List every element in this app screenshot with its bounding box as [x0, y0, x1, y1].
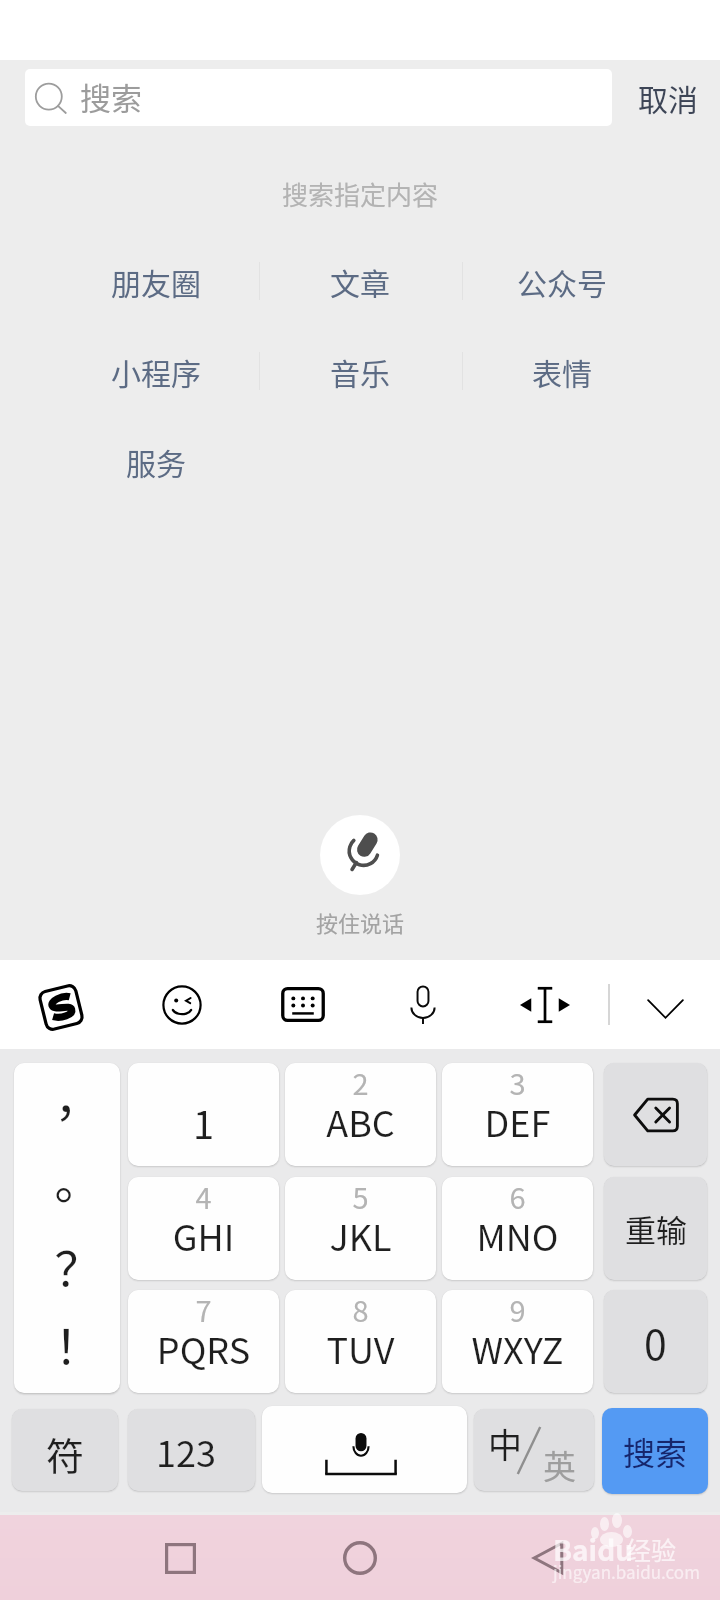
- button[interactable]: 文章: [290, 249, 430, 313]
- staticText: 服务: [126, 440, 186, 483]
- button[interactable]: Home: [320, 1532, 400, 1584]
- button[interactable]: 6 MNO: [442, 1177, 593, 1280]
- staticText: 9: [442, 1290, 593, 1330]
- staticText: 经验: [626, 1531, 677, 1567]
- staticText: 搜索指定内容: [0, 175, 720, 213]
- button[interactable]: 重输: [604, 1177, 707, 1280]
- staticText: 小程序: [111, 350, 201, 393]
- staticText: 重输: [625, 1206, 687, 1251]
- button[interactable]: Recents: [140, 1532, 220, 1584]
- staticText: 取消: [638, 76, 698, 119]
- staticText: 公众号: [517, 260, 607, 303]
- button[interactable]: Emoji: [150, 960, 214, 1049]
- button[interactable]: 123: [128, 1409, 255, 1491]
- button[interactable]: 朋友圈: [86, 249, 226, 313]
- staticText: 按住说话: [0, 906, 720, 938]
- button[interactable]: 小程序: [86, 339, 226, 403]
- staticText: 搜索: [80, 74, 142, 119]
- button[interactable]: 音乐: [290, 339, 430, 403]
- staticText: 123: [156, 1425, 216, 1477]
- staticText: jingyan.baidu.com: [553, 1559, 700, 1584]
- staticText: 。: [25, 1144, 120, 1212]
- staticText: 音乐: [330, 350, 390, 393]
- button[interactable]: 取消: [620, 69, 715, 126]
- staticText: ，: [25, 1063, 120, 1129]
- button[interactable]: 搜索: [602, 1408, 708, 1494]
- button[interactable]: Hold to talk: [320, 815, 400, 895]
- button[interactable]: Backspace: [604, 1063, 707, 1166]
- staticText: Baidu: [553, 1529, 633, 1570]
- staticText: ABC: [285, 1095, 436, 1147]
- staticText: 4: [128, 1177, 279, 1217]
- button[interactable]: 4 GHI: [128, 1177, 279, 1280]
- button[interactable]: 0: [604, 1290, 707, 1393]
- button[interactable]: Voice input: [391, 960, 455, 1049]
- staticText: 符: [46, 1426, 85, 1481]
- button[interactable]: 服务: [86, 429, 226, 493]
- button[interactable]: 表情: [492, 339, 632, 403]
- button[interactable]: Punctuation: [14, 1063, 120, 1393]
- button[interactable]: 2 ABC: [285, 1063, 436, 1166]
- button[interactable]: 公众号: [492, 249, 632, 313]
- staticText: 搜索: [623, 1428, 688, 1474]
- button[interactable]: 搜索: [25, 69, 612, 126]
- staticText: 表情: [532, 350, 592, 393]
- staticText: 5: [285, 1177, 436, 1217]
- button[interactable]: Move cursor: [513, 960, 577, 1049]
- button[interactable]: 中英切换: [474, 1409, 594, 1491]
- staticText: 6: [442, 1177, 593, 1217]
- staticText: ？: [25, 1231, 120, 1299]
- staticText: PQRS: [128, 1322, 279, 1374]
- staticText: 8: [285, 1290, 436, 1330]
- staticText: WXYZ: [442, 1322, 593, 1374]
- button[interactable]: Back: [533, 1532, 597, 1584]
- staticText: 2: [285, 1063, 436, 1103]
- staticText: ！: [25, 1309, 120, 1377]
- staticText: 1: [128, 1095, 279, 1150]
- staticText: 朋友圈: [111, 260, 201, 303]
- staticText: 7: [128, 1290, 279, 1330]
- staticText: DEF: [442, 1095, 593, 1147]
- button[interactable]: 1: [128, 1063, 279, 1166]
- button[interactable]: Hide keyboard: [633, 960, 697, 1049]
- button[interactable]: 符: [12, 1409, 118, 1491]
- staticText: 中: [488, 1419, 522, 1468]
- button[interactable]: 5 JKL: [285, 1177, 436, 1280]
- staticText: 文章: [330, 260, 390, 303]
- staticText: TUV: [285, 1322, 436, 1374]
- button[interactable]: Sogou input: [29, 960, 93, 1049]
- button[interactable]: 3 DEF: [442, 1063, 593, 1166]
- button[interactable]: 8 TUV: [285, 1290, 436, 1393]
- staticText: 英: [543, 1441, 576, 1489]
- staticText: 3: [442, 1063, 593, 1103]
- staticText: 0: [644, 1312, 667, 1371]
- button[interactable]: Space / voice: [262, 1406, 467, 1493]
- button[interactable]: 7 PQRS: [128, 1290, 279, 1393]
- staticText: JKL: [285, 1209, 436, 1261]
- button[interactable]: Keyboard layout: [271, 960, 335, 1049]
- button[interactable]: 9 WXYZ: [442, 1290, 593, 1393]
- staticText: GHI: [128, 1209, 279, 1261]
- staticText: MNO: [442, 1209, 593, 1261]
